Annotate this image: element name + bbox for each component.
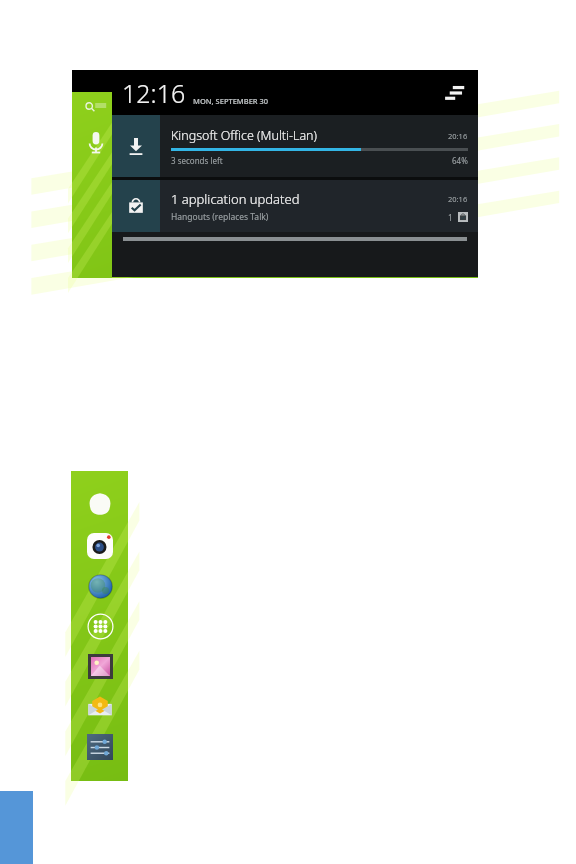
staticText: 3 seconds left bbox=[171, 155, 452, 166]
button[interactable]: Settings bbox=[84, 731, 116, 763]
staticText: 12:16 bbox=[122, 76, 186, 110]
staticText: 20:16 bbox=[448, 194, 468, 204]
button[interactable]: Camera bbox=[84, 530, 116, 562]
staticText: Kingsoft Office (Multi-Lan) bbox=[171, 127, 448, 144]
staticText: 64% bbox=[452, 155, 468, 166]
button[interactable]: Quick settings bbox=[442, 80, 468, 106]
button[interactable]: Email bbox=[84, 691, 116, 723]
staticText: 20:16 bbox=[448, 131, 468, 141]
button[interactable]: Kingsoft Office (Multi-Lan) bbox=[112, 115, 478, 177]
button[interactable]: Apps bbox=[84, 610, 116, 642]
staticText: 1 application updated bbox=[171, 190, 448, 208]
staticText: 1 bbox=[448, 212, 453, 223]
button[interactable]: 1 application updated bbox=[112, 180, 478, 232]
button[interactable]: 4K Video bbox=[84, 489, 116, 521]
button[interactable]: Browser bbox=[84, 570, 116, 602]
staticText: MON, SEPTEMBER 30 bbox=[193, 96, 269, 106]
staticText: Hangouts (replaces Talk) bbox=[171, 211, 448, 223]
button[interactable]: Gallery bbox=[84, 650, 116, 682]
